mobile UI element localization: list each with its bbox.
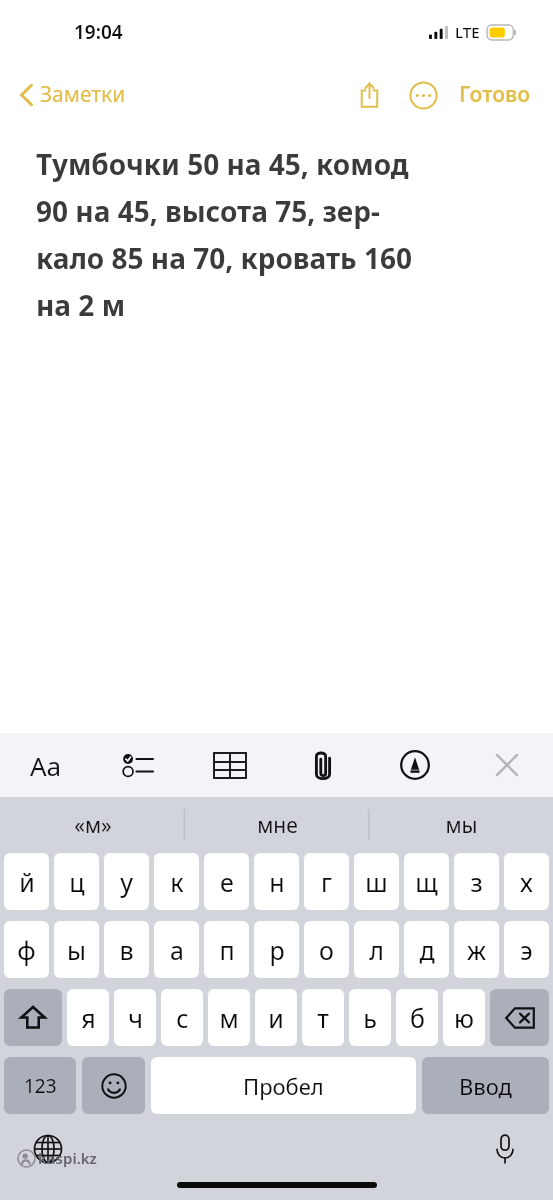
button[interactable]: ы	[54, 921, 99, 978]
button[interactable]: я	[67, 989, 109, 1046]
staticText: н	[269, 865, 285, 899]
button[interactable]: б	[396, 989, 438, 1046]
staticText: о	[319, 933, 334, 967]
button[interactable]: Share	[347, 73, 391, 117]
button[interactable]: мы	[369, 797, 553, 853]
button[interactable]: д	[404, 921, 449, 978]
staticText: с	[176, 1001, 189, 1035]
staticText: у	[120, 865, 133, 899]
staticText: ч	[128, 1001, 143, 1035]
button[interactable]: Заметки	[12, 74, 134, 115]
button[interactable]: ю	[443, 989, 485, 1046]
button[interactable]: н	[254, 853, 299, 910]
button[interactable]: Готово	[453, 72, 537, 117]
staticText: кало 85 на 70, кровать 160	[36, 239, 412, 277]
staticText: д	[419, 933, 435, 967]
button[interactable]: More options	[401, 73, 445, 117]
button[interactable]: Change keyboard	[28, 1129, 68, 1169]
button[interactable]: в	[104, 921, 149, 978]
staticText: б	[410, 1001, 425, 1035]
button[interactable]: ш	[354, 853, 399, 910]
staticText: Ввод	[459, 1071, 512, 1101]
staticText: мне	[257, 811, 298, 840]
staticText: п	[219, 933, 235, 967]
button[interactable]: Attach	[299, 741, 347, 789]
button[interactable]: мне	[185, 797, 369, 853]
staticText: а	[170, 933, 184, 967]
staticText: Тумбочки 50 на 45, комод	[36, 145, 409, 183]
staticText: м	[219, 1001, 239, 1035]
button[interactable]: 123	[4, 1057, 76, 1114]
staticText: ю	[454, 1001, 474, 1035]
staticText: р	[269, 933, 285, 967]
button[interactable]: Пробел	[151, 1057, 416, 1114]
staticText: я	[81, 1001, 96, 1035]
staticText: 123	[24, 1073, 57, 1099]
staticText: ш	[365, 865, 388, 899]
button[interactable]: ц	[54, 853, 99, 910]
staticText: kaspi.kz	[38, 1148, 97, 1168]
staticText: щ	[415, 865, 438, 899]
staticText: «м»	[74, 811, 112, 840]
staticText: л	[369, 933, 384, 967]
button[interactable]: о	[304, 921, 349, 978]
button[interactable]: у	[104, 853, 149, 910]
button[interactable]: Emoji	[82, 1057, 145, 1114]
staticText: на 2 м	[36, 286, 126, 324]
button[interactable]: г	[304, 853, 349, 910]
button[interactable]: л	[354, 921, 399, 978]
staticText: к	[170, 865, 184, 899]
button[interactable]: Text format	[22, 741, 70, 789]
staticText: и	[268, 1001, 284, 1035]
staticText: г	[321, 865, 332, 899]
staticText: е	[220, 865, 234, 899]
staticText: ж	[467, 933, 486, 967]
button[interactable]: и	[255, 989, 297, 1046]
staticText: ц	[69, 865, 85, 899]
staticText: LTE	[455, 22, 480, 42]
staticText: й	[19, 865, 35, 899]
button[interactable]: р	[254, 921, 299, 978]
button[interactable]: «м»	[0, 797, 185, 853]
staticText: т	[317, 1001, 329, 1035]
staticText: 90 на 45, высота 75, зер-	[36, 192, 380, 230]
button[interactable]: э	[504, 921, 549, 978]
staticText: мы	[445, 811, 478, 840]
button[interactable]: з	[454, 853, 499, 910]
staticText: ь	[363, 1001, 377, 1035]
button[interactable]: Markup	[391, 741, 439, 789]
button[interactable]: т	[302, 989, 344, 1046]
staticText: в	[119, 933, 134, 967]
staticText: 19:04	[74, 19, 123, 45]
staticText: Пробел	[243, 1071, 324, 1101]
staticText: ы	[67, 933, 86, 967]
staticText: Aa	[30, 748, 62, 783]
button[interactable]: ч	[114, 989, 156, 1046]
button[interactable]: к	[154, 853, 199, 910]
button[interactable]: ф	[4, 921, 49, 978]
button[interactable]: ж	[454, 921, 499, 978]
button[interactable]: Checklist	[114, 741, 162, 789]
button[interactable]: м	[208, 989, 250, 1046]
button[interactable]: ь	[349, 989, 391, 1046]
button[interactable]: с	[161, 989, 203, 1046]
button[interactable]: х	[504, 853, 549, 910]
button[interactable]: Ввод	[422, 1057, 549, 1114]
staticText: ф	[17, 933, 36, 967]
button[interactable]: Backspace	[490, 989, 549, 1046]
button[interactable]: Dictation	[485, 1129, 525, 1169]
staticText: з	[470, 865, 483, 899]
button[interactable]: а	[154, 921, 199, 978]
button[interactable]: Table	[206, 741, 254, 789]
button[interactable]: щ	[404, 853, 449, 910]
button[interactable]: Close keyboard	[483, 741, 531, 789]
button[interactable]: п	[204, 921, 249, 978]
staticText: э	[520, 933, 533, 967]
staticText: х	[520, 865, 533, 899]
button[interactable]: й	[4, 853, 49, 910]
staticText: Готово	[459, 80, 531, 109]
button[interactable]: е	[204, 853, 249, 910]
button[interactable]: Shift	[4, 989, 62, 1046]
staticText: Заметки	[40, 80, 126, 109]
